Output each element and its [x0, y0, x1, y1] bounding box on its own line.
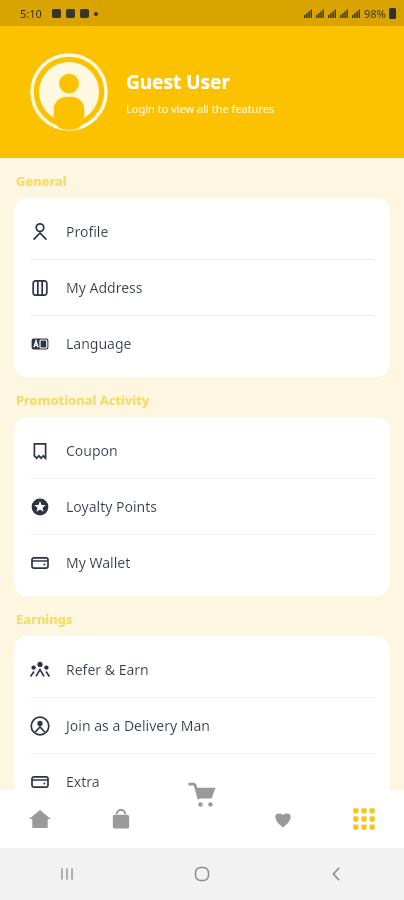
- staticText: 5:10: [20, 6, 42, 21]
- button[interactable]: Language: [14, 316, 390, 371]
- button[interactable]: Profile: [14, 204, 390, 259]
- button[interactable]: Extra: [14, 754, 390, 809]
- staticText: Guest User: [126, 69, 230, 95]
- staticText: Loyalty Points: [66, 497, 157, 516]
- staticText: 98%: [364, 6, 386, 21]
- staticText: Refer & Earn: [66, 660, 149, 679]
- button[interactable]: Join as a Delivery Man: [14, 698, 390, 753]
- button[interactable]: My Address: [14, 260, 390, 315]
- staticText: Coupon: [66, 441, 118, 460]
- button[interactable]: Favourites: [242, 790, 323, 848]
- button[interactable]: Orders: [80, 790, 161, 848]
- button[interactable]: Home: [0, 790, 80, 848]
- staticText: My Address: [66, 278, 143, 297]
- staticText: Login to view all the features: [126, 101, 275, 116]
- button[interactable]: Loyalty Points: [14, 479, 390, 534]
- staticText: General: [16, 172, 67, 190]
- button[interactable]: Coupon: [14, 423, 390, 478]
- button[interactable]: My Wallet: [14, 535, 390, 590]
- button[interactable]: Cart: [171, 764, 233, 826]
- button[interactable]: More: [323, 790, 404, 848]
- staticText: Join as a Delivery Man: [66, 716, 211, 735]
- staticText: Promotional Activity: [16, 391, 150, 409]
- staticText: Profile: [66, 222, 109, 241]
- staticText: Earnings: [16, 610, 73, 628]
- staticText: Extra: [66, 772, 100, 791]
- button[interactable]: Refer & Earn: [14, 642, 390, 697]
- staticText: My Wallet: [66, 553, 131, 572]
- staticText: Language: [66, 334, 132, 353]
